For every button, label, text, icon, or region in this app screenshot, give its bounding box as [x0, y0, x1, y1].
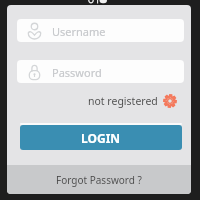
button[interactable]: Username	[17, 19, 184, 42]
staticText: not registered	[88, 94, 158, 108]
button[interactable]: LOGIN	[20, 125, 182, 150]
staticText: Username	[52, 24, 106, 39]
button[interactable]: Forgot Password ?	[7, 165, 191, 194]
staticText: LOGIN	[81, 130, 121, 146]
button[interactable]: not registered	[88, 94, 177, 108]
staticText: Password	[52, 65, 102, 80]
staticText: Forgot Password ?	[56, 173, 142, 187]
button[interactable]: Password	[17, 60, 184, 83]
